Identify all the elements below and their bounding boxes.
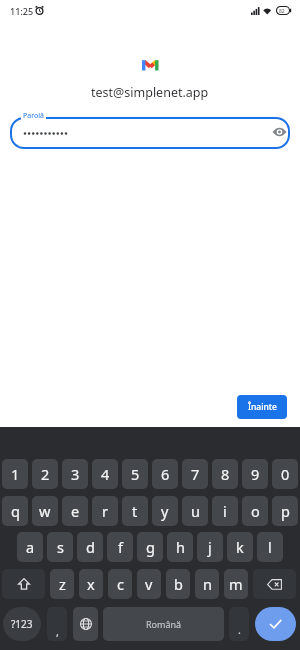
button[interactable]: .: [229, 607, 249, 641]
staticText: 4: [101, 464, 110, 484]
staticText: 1: [11, 464, 20, 484]
button[interactable]: e: [62, 496, 88, 526]
staticText: 6: [161, 464, 170, 484]
staticText: h: [176, 537, 185, 557]
staticText: m: [229, 574, 243, 594]
staticText: w: [39, 501, 51, 521]
button[interactable]: g: [137, 532, 163, 562]
button[interactable]: [253, 569, 296, 599]
staticText: x: [87, 574, 95, 594]
button[interactable]: x: [79, 569, 103, 599]
button[interactable]: 9: [242, 459, 268, 489]
button[interactable]: 3: [62, 459, 88, 489]
staticText: 0: [281, 464, 290, 484]
button[interactable]: y: [152, 496, 178, 526]
staticText: d: [86, 537, 95, 557]
button[interactable]: [73, 607, 98, 641]
staticText: t: [132, 501, 138, 521]
staticText: 82: [279, 8, 285, 15]
button[interactable]: h: [167, 532, 193, 562]
staticText: r: [102, 501, 108, 521]
staticText: b: [174, 574, 183, 594]
button[interactable]: l: [257, 532, 283, 562]
button[interactable]: p: [272, 496, 298, 526]
staticText: 8: [221, 464, 230, 484]
staticText: j: [208, 537, 212, 557]
staticText: y: [161, 501, 169, 521]
button[interactable]: Română: [103, 607, 224, 641]
button[interactable]: k: [227, 532, 253, 562]
button[interactable]: [255, 607, 296, 641]
staticText: Înainte: [248, 401, 277, 413]
staticText: 2: [41, 464, 50, 484]
staticText: ?123: [11, 617, 33, 631]
button[interactable]: z: [50, 569, 74, 599]
button[interactable]: i: [212, 496, 238, 526]
staticText: Română: [146, 618, 182, 630]
button[interactable]: ,: [47, 607, 67, 641]
staticText: c: [117, 574, 124, 594]
staticText: e: [71, 501, 80, 521]
button[interactable]: c: [108, 569, 132, 599]
button[interactable]: [10, 117, 290, 149]
staticText: v: [145, 574, 153, 594]
staticText: a: [26, 537, 35, 557]
button[interactable]: t: [122, 496, 148, 526]
staticText: test@simplenet.app: [91, 84, 209, 101]
staticText: .: [238, 622, 241, 637]
button[interactable]: 1: [2, 459, 28, 489]
button[interactable]: o: [242, 496, 268, 526]
button[interactable]: u: [182, 496, 208, 526]
button[interactable]: w: [32, 496, 58, 526]
staticText: f: [118, 537, 123, 557]
staticText: Parolă: [23, 111, 44, 121]
staticText: l: [268, 537, 272, 557]
button[interactable]: f: [107, 532, 133, 562]
button[interactable]: j: [197, 532, 223, 562]
button[interactable]: 4: [92, 459, 118, 489]
button[interactable]: Înainte: [237, 395, 287, 419]
staticText: 7: [191, 464, 200, 484]
button[interactable]: [2, 569, 45, 599]
button[interactable]: s: [47, 532, 73, 562]
button[interactable]: q: [2, 496, 28, 526]
button[interactable]: 8: [212, 459, 238, 489]
button[interactable]: ?123: [3, 607, 41, 641]
button[interactable]: [272, 126, 288, 140]
staticText: 3: [71, 464, 80, 484]
staticText: z: [59, 574, 66, 594]
button[interactable]: 2: [32, 459, 58, 489]
button[interactable]: r: [92, 496, 118, 526]
staticText: ,: [56, 624, 59, 639]
button[interactable]: d: [77, 532, 103, 562]
staticText: 9: [251, 464, 260, 484]
button[interactable]: v: [137, 569, 161, 599]
staticText: p: [281, 501, 290, 521]
button[interactable]: m: [224, 569, 248, 599]
button[interactable]: n: [195, 569, 219, 599]
button[interactable]: 0: [272, 459, 298, 489]
staticText: 11:25: [10, 5, 34, 17]
staticText: k: [236, 537, 244, 557]
staticText: 5: [131, 464, 140, 484]
button[interactable]: b: [166, 569, 190, 599]
button[interactable]: 7: [182, 459, 208, 489]
staticText: q: [11, 501, 20, 521]
button[interactable]: 6: [152, 459, 178, 489]
button[interactable]: 5: [122, 459, 148, 489]
staticText: s: [57, 537, 64, 557]
staticText: i: [223, 501, 227, 521]
staticText: n: [203, 574, 212, 594]
button[interactable]: a: [17, 532, 43, 562]
staticText: u: [191, 501, 200, 521]
staticText: o: [251, 501, 260, 521]
staticText: g: [146, 537, 155, 557]
